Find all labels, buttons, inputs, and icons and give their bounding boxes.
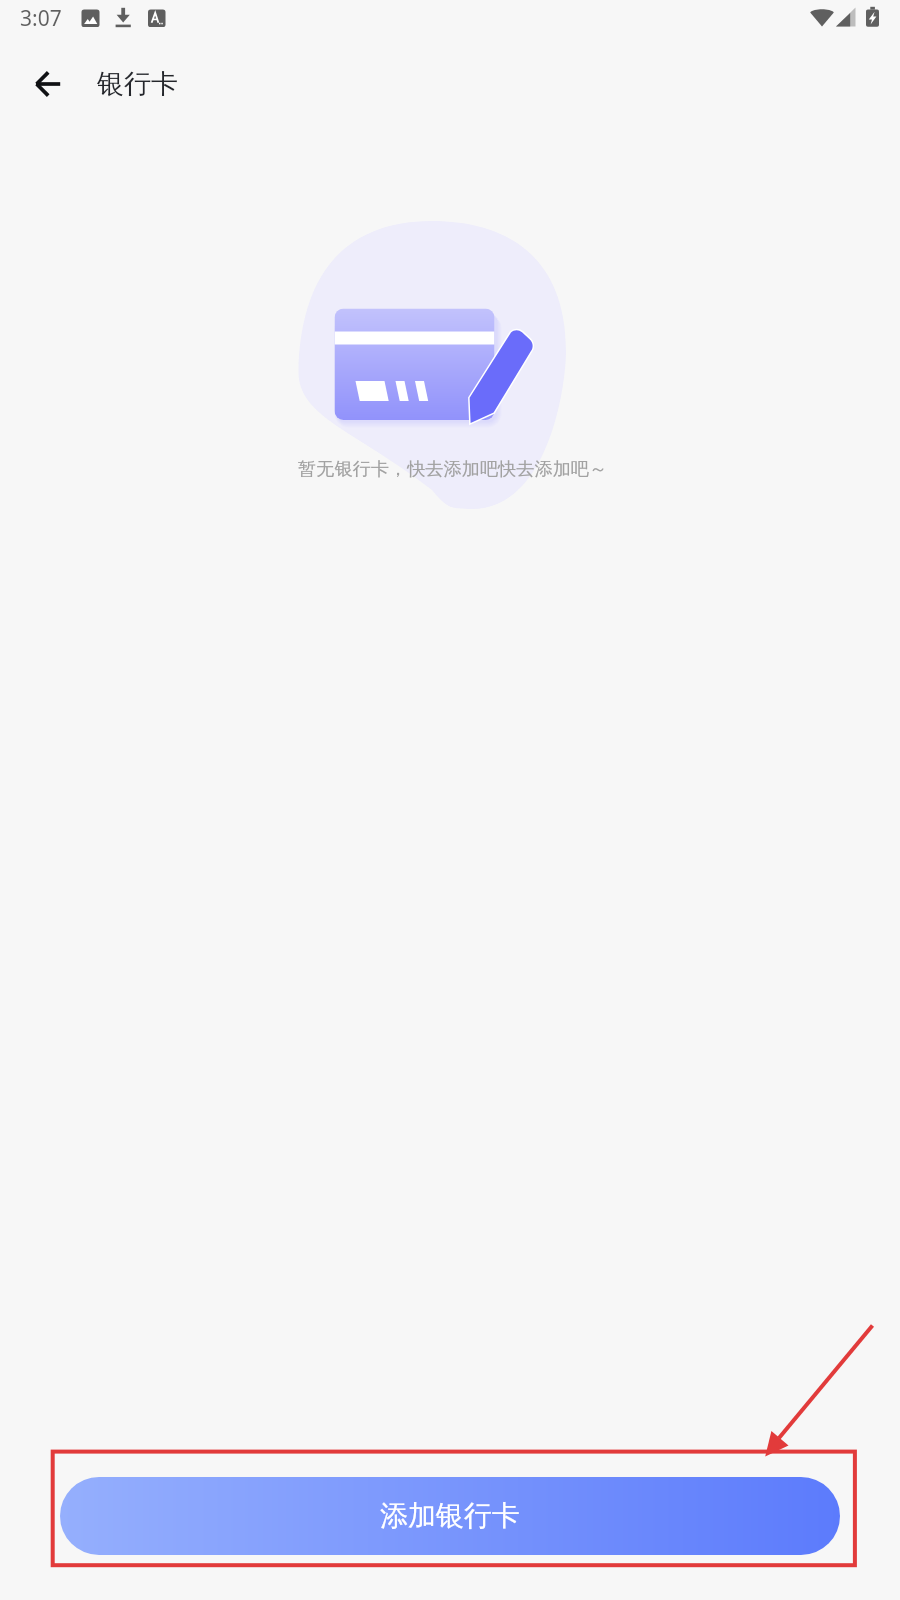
button[interactable]: Back [14, 50, 82, 118]
staticText: 添加银行卡 [380, 1498, 520, 1533]
staticText: 暂无银行卡，快去添加吧快去添加吧～ [298, 457, 608, 480]
staticText: 银行卡 [97, 67, 178, 101]
staticText: 3:07 [20, 4, 62, 33]
button[interactable]: 添加银行卡 [60, 1477, 840, 1555]
